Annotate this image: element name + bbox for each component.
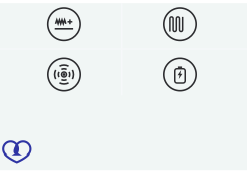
button[interactable]: Low power mode: [163, 57, 197, 91]
button[interactable]: Heart health: [0, 138, 33, 165]
button[interactable]: Hairline: [47, 7, 81, 41]
button[interactable]: Waves: [163, 7, 197, 41]
button[interactable]: Haptics: [47, 57, 81, 91]
